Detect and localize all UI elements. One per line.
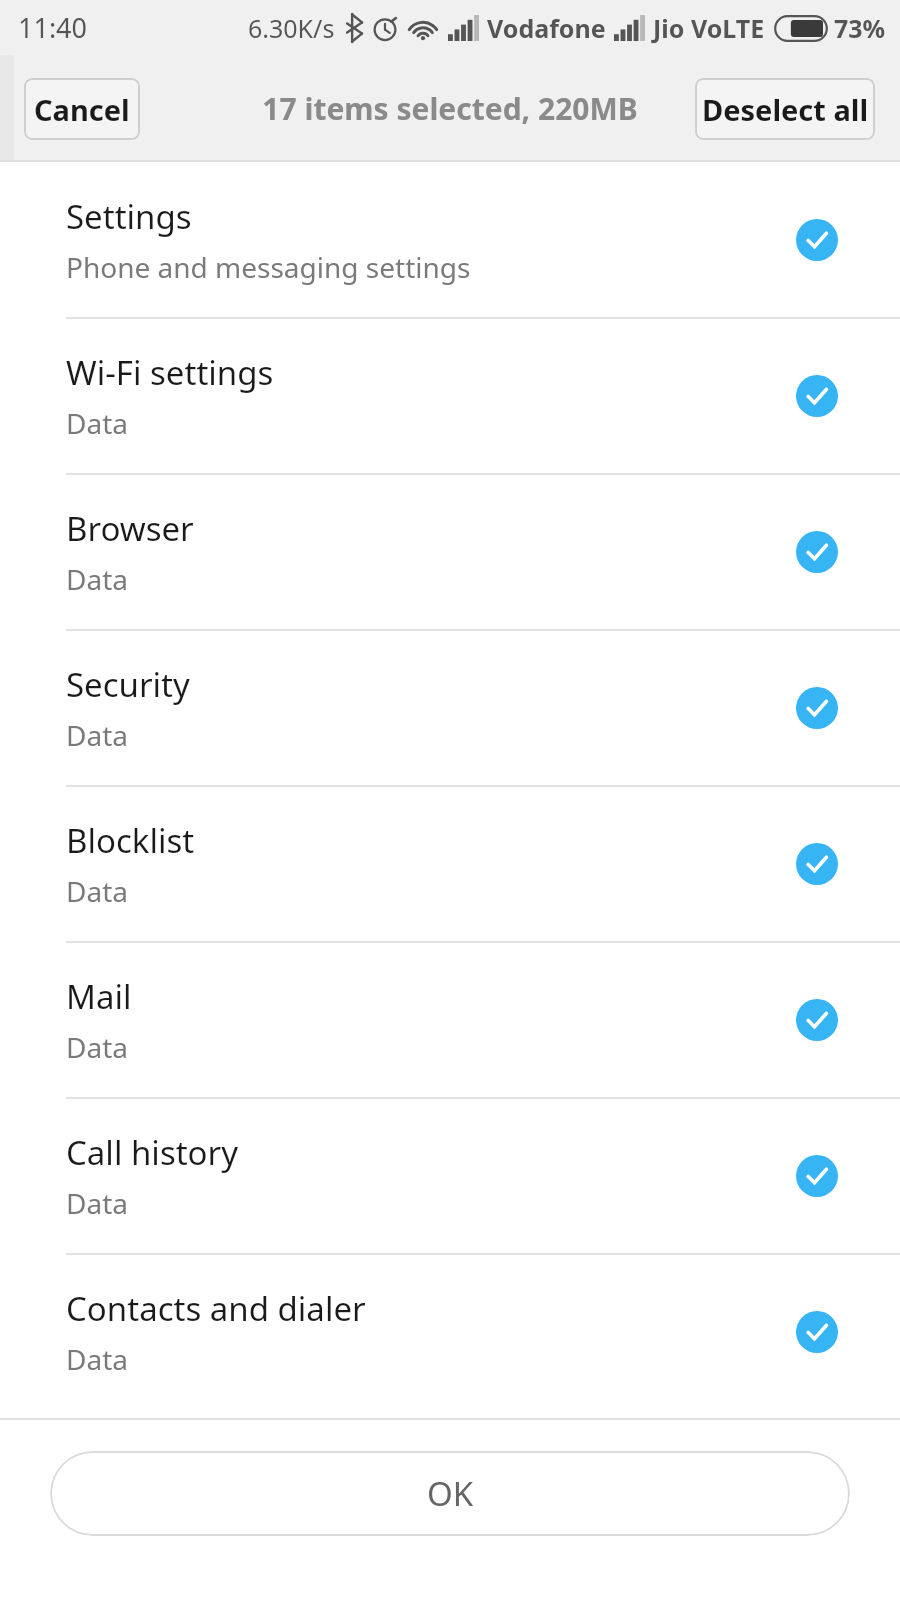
other: Selected: [796, 843, 838, 885]
staticText: Jio VoLTE: [653, 11, 765, 45]
staticText: Data: [66, 872, 128, 910]
other: Selected: [796, 1311, 838, 1353]
staticText: Blocklist: [66, 818, 195, 863]
staticText: Deselect all: [702, 90, 869, 129]
staticText: Data: [66, 1184, 128, 1222]
staticText: Cancel: [34, 90, 130, 129]
button[interactable]: Security: [0, 631, 900, 785]
button[interactable]: Wi-Fi settings: [0, 319, 900, 473]
button[interactable]: Cancel: [24, 78, 140, 140]
button[interactable]: Mail: [0, 943, 900, 1097]
staticText: Data: [66, 560, 128, 598]
staticText: Data: [66, 404, 128, 442]
other: Selected: [796, 531, 838, 573]
staticText: Contacts and dialer: [66, 1286, 366, 1331]
staticText: 17 items selected, 220MB: [262, 88, 638, 129]
button[interactable]: Blocklist: [0, 787, 900, 941]
staticText: Data: [66, 716, 128, 754]
staticText: Data: [66, 1028, 128, 1066]
staticText: Settings: [66, 194, 192, 239]
staticText: Wi-Fi settings: [66, 350, 274, 395]
staticText: Call history: [66, 1130, 239, 1175]
staticText: 11:40: [18, 9, 88, 46]
staticText: Phone and messaging settings: [66, 248, 471, 286]
staticText: Data: [66, 1340, 128, 1378]
staticText: 73%: [834, 11, 886, 45]
other: Selected: [796, 687, 838, 729]
other: Selected: [796, 375, 838, 417]
other: Selected: [796, 219, 838, 261]
staticText: Vodafone: [487, 11, 606, 45]
button[interactable]: Settings: [0, 162, 900, 317]
button[interactable]: Deselect all: [695, 78, 875, 140]
button[interactable]: Contacts and dialer: [0, 1255, 900, 1409]
staticText: Security: [66, 662, 190, 707]
staticText: Browser: [66, 506, 194, 551]
staticText: Mail: [66, 974, 132, 1019]
staticText: OK: [427, 1471, 474, 1516]
other: Selected: [796, 999, 838, 1041]
staticText: 6.30K/s: [248, 11, 335, 45]
button[interactable]: OK: [50, 1451, 850, 1536]
other: Selected: [796, 1155, 838, 1197]
button[interactable]: Call history: [0, 1099, 900, 1253]
button[interactable]: Browser: [0, 475, 900, 629]
